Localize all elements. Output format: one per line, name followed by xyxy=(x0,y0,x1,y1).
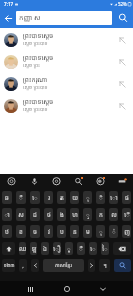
button[interactable]: ច xyxy=(30,225,40,238)
staticText: ៃ xyxy=(102,245,108,253)
button[interactable]: ួ xyxy=(65,242,73,255)
button[interactable]: យ xyxy=(70,191,79,204)
staticText: ញ xyxy=(124,228,130,236)
staticText: ន xyxy=(73,228,77,236)
button[interactable]: ល xyxy=(109,208,118,221)
button[interactable]: ប xyxy=(57,225,66,238)
staticText: ឿ xyxy=(53,245,61,253)
button[interactable]: ត xyxy=(57,191,66,204)
button[interactable]: ឆ xyxy=(2,191,12,204)
staticText: ោ xyxy=(110,194,118,202)
button[interactable] xyxy=(113,242,131,255)
button[interactable]: Keyboard tool xyxy=(89,174,111,189)
button[interactable]: Keyboard tool xyxy=(67,174,89,189)
staticText: ១២៣ xyxy=(3,262,15,269)
button[interactable]: Keyboard tool xyxy=(0,174,23,189)
button[interactable]: Back xyxy=(0,8,16,28)
staticText: ស្ដេច ព្រះបាទ xyxy=(23,106,48,113)
button[interactable]: ុ xyxy=(96,225,105,238)
button[interactable]: ម xyxy=(83,225,92,238)
button[interactable]: ន xyxy=(70,225,79,238)
staticText: កញ្ញា ស xyxy=(19,13,41,23)
button[interactable] xyxy=(88,259,95,272)
button[interactable]: , xyxy=(19,259,27,272)
button[interactable]: ឋ xyxy=(2,225,12,238)
button[interactable]: ា xyxy=(2,208,12,221)
button[interactable] xyxy=(114,259,131,272)
staticText: ច xyxy=(33,228,37,236)
staticText: ុ xyxy=(99,228,103,236)
staticText: ឆ xyxy=(5,194,9,202)
button[interactable]: ។ xyxy=(99,259,110,272)
staticText: ដ xyxy=(33,211,37,219)
button[interactable]: ព្រះបាទស្ដេច xyxy=(0,95,133,117)
button[interactable]: ផ xyxy=(122,191,131,204)
staticText: ្ xyxy=(86,211,90,219)
staticText: ត xyxy=(60,194,64,202)
button[interactable]: ព្រះបាទស្ដេច xyxy=(0,29,133,51)
staticText: ព្រះបាទស្ដេច xyxy=(23,53,54,62)
staticText: 52% xyxy=(118,1,127,7)
button[interactable]: ឡ xyxy=(30,242,37,255)
button[interactable]: Home xyxy=(60,282,74,296)
button[interactable]: Keyboard tool xyxy=(45,174,67,189)
button[interactable]: Search xyxy=(112,8,133,28)
button[interactable]: េ xyxy=(30,191,40,204)
button[interactable]: Keyboard tool xyxy=(23,174,45,189)
button[interactable]: ព្រះបាទស្ដេច xyxy=(0,51,133,73)
button[interactable]: ឈ xyxy=(19,242,26,255)
button[interactable]: ង xyxy=(57,208,66,221)
button[interactable]: ១២៣ xyxy=(2,259,15,272)
staticText: ុ xyxy=(86,194,90,202)
staticText: ស xyxy=(18,211,24,219)
button[interactable]: ់ xyxy=(109,225,118,238)
button[interactable]: ដ xyxy=(30,208,40,221)
button[interactable] xyxy=(31,259,39,272)
button[interactable]: ិ xyxy=(96,191,105,204)
staticText: ា xyxy=(4,211,10,219)
button[interactable] xyxy=(2,242,15,255)
button[interactable]: Keyboard tool xyxy=(111,174,133,189)
button[interactable]: ឿ xyxy=(53,242,61,255)
button[interactable]: ោ xyxy=(109,191,118,204)
button[interactable]: ថ xyxy=(44,208,53,221)
button[interactable]: ឹ xyxy=(16,191,26,204)
button[interactable]: ព្រះករុណា xyxy=(0,73,133,95)
staticText: ង xyxy=(60,211,64,219)
button[interactable]: Insert query xyxy=(113,53,131,71)
button[interactable]: ្ xyxy=(83,208,92,221)
button[interactable]: Insert query xyxy=(113,31,131,49)
button[interactable]: េ xyxy=(89,242,97,255)
staticText: ខ xyxy=(19,228,23,236)
staticText: ឋ xyxy=(5,228,9,236)
button[interactable]: ឯ xyxy=(41,242,49,255)
button[interactable]: Insert query xyxy=(113,75,131,93)
staticText: ួ xyxy=(67,245,71,253)
staticText: ម xyxy=(86,228,90,236)
button[interactable]: កញ្ញា ស xyxy=(16,11,112,25)
staticText: 7:17 xyxy=(4,1,14,7)
button[interactable]: Recents xyxy=(23,282,37,296)
staticText: ព្រះបាទស្ដេច xyxy=(23,31,54,40)
staticText: ឺ xyxy=(79,245,83,253)
button[interactable]: ុ xyxy=(83,191,92,204)
button[interactable]: Back xyxy=(96,282,110,296)
button[interactable]: ឺ xyxy=(77,242,85,255)
button[interactable]: ក xyxy=(96,208,105,221)
button[interactable]: ស xyxy=(16,208,26,221)
button[interactable]: វ xyxy=(44,225,53,238)
staticText: ឹ xyxy=(19,194,23,202)
button[interactable]: ខ xyxy=(16,225,26,238)
staticText: ិ xyxy=(99,194,103,202)
button[interactable]: ញ xyxy=(122,225,131,238)
staticText: ព្រះបាទស្ដេច xyxy=(23,97,54,106)
button[interactable]: ភាសាខ្មែរ xyxy=(43,259,84,272)
button[interactable]: ើ xyxy=(122,208,131,221)
button[interactable]: ហ xyxy=(70,208,79,221)
staticText: ព្រះករុណា xyxy=(23,75,48,84)
staticText: វ xyxy=(48,228,50,236)
button[interactable]: ៃ xyxy=(101,242,109,255)
button[interactable]: រ xyxy=(44,191,53,204)
button[interactable]: Insert query xyxy=(113,97,131,115)
staticText: ហ xyxy=(72,211,78,219)
